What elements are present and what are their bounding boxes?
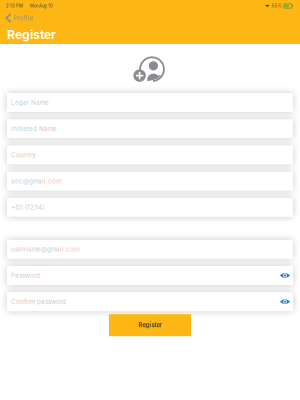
- button[interactable]: Legal Name: [7, 93, 293, 112]
- staticText: 2:13 PM: [6, 3, 23, 8]
- button[interactable]: abc@gmail.com: [7, 172, 293, 191]
- staticText: Mon Aug 10: [30, 3, 53, 8]
- staticText: Register: [7, 27, 56, 42]
- staticText: username@gmail.com: [11, 245, 79, 253]
- button[interactable]: Confirm password: [7, 292, 293, 311]
- staticText: +(0) (1234): [11, 203, 44, 211]
- staticText: Initiated Name: [11, 125, 57, 132]
- button[interactable]: Password: [7, 266, 293, 285]
- button[interactable]: Register: [109, 314, 191, 336]
- button[interactable]: Country: [7, 145, 293, 164]
- staticText: Profile: [13, 14, 33, 22]
- staticText: Password: [11, 272, 40, 279]
- staticText: abc@gmail.com: [11, 177, 61, 185]
- staticText: Register: [138, 322, 161, 329]
- staticText: Legal Name: [11, 99, 49, 106]
- button[interactable]: username@gmail.com: [7, 240, 293, 259]
- staticText: Confirm password: [11, 298, 66, 305]
- staticText: Country: [11, 151, 36, 159]
- button[interactable]: Profile: [0, 12, 39, 24]
- button[interactable]: +(0) (1234): [7, 198, 293, 217]
- staticText: 55%: [272, 3, 282, 8]
- button[interactable]: Initiated Name: [7, 119, 293, 138]
